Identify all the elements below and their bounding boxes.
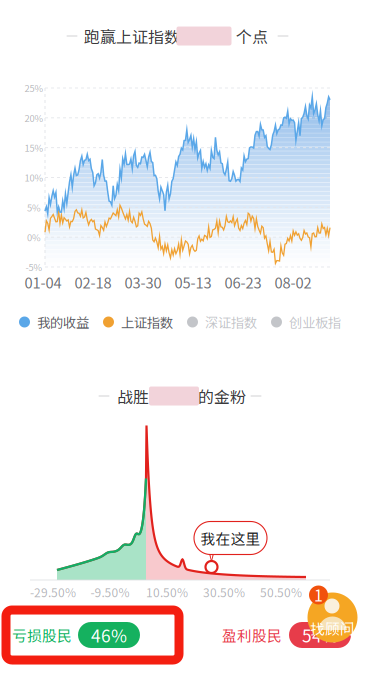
staticText: 46% <box>91 622 127 648</box>
staticText: 10.50% <box>146 583 188 601</box>
staticText: 20% <box>24 111 43 125</box>
staticText: 0% <box>27 230 41 244</box>
staticText: 战胜 <box>117 384 149 408</box>
staticText: 08-02 <box>274 271 311 293</box>
staticText: 03-30 <box>124 271 161 293</box>
staticText: 找顾问 <box>310 617 355 639</box>
staticText: 05-13 <box>174 271 211 293</box>
staticText: 跑赢上证指数 <box>84 24 180 48</box>
staticText: 06-23 <box>224 271 261 293</box>
staticText: 亏损股民 <box>12 624 72 646</box>
button[interactable]: 我的收益 <box>19 312 89 332</box>
button[interactable]: 盈利股民 <box>0 0 373 676</box>
staticText: 50.50% <box>260 583 302 601</box>
staticText: 10% <box>24 171 43 184</box>
staticText: 1 <box>314 583 323 606</box>
staticText: 01-04 <box>24 271 61 293</box>
staticText: 5% <box>27 201 41 214</box>
staticText: 上证指数 <box>121 312 173 332</box>
staticText: -29.50% <box>30 583 76 601</box>
staticText: -9.50% <box>90 583 129 601</box>
staticText: 个点 <box>236 24 268 48</box>
staticText: 我在这里 <box>200 527 260 549</box>
staticText: 的金粉 <box>198 384 246 408</box>
button[interactable]: 深证指数 <box>187 312 257 332</box>
staticText: 54% <box>302 622 338 648</box>
staticText: -5% <box>25 260 42 274</box>
button[interactable]: 上证指数 <box>103 312 173 332</box>
staticText: 盈利股民 <box>222 624 282 646</box>
staticText: 15% <box>24 141 43 154</box>
staticText: 25% <box>24 81 43 95</box>
button[interactable]: 亏损股民 <box>0 0 373 676</box>
staticText: 创业板指 <box>289 312 341 332</box>
button[interactable]: 找顾问 <box>0 0 373 676</box>
staticText: 我的收益 <box>37 312 89 332</box>
staticText: 02-18 <box>74 271 111 293</box>
staticText: 30.50% <box>203 583 245 601</box>
button[interactable]: 创业板指 <box>271 312 341 332</box>
staticText: 深证指数 <box>205 312 257 332</box>
